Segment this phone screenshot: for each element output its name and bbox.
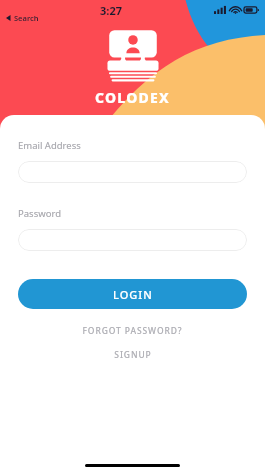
button[interactable] [18,229,247,251]
staticText: Email Address [18,139,81,152]
staticText: LOGIN [113,287,153,302]
staticText: COLODEX [95,88,170,107]
staticText: 3:27 [100,3,122,18]
button[interactable]: SIGNUP [18,347,247,363]
button[interactable]: FORGOT PASSWORD? [18,323,247,339]
staticText: Password [18,207,61,220]
button[interactable] [18,161,247,183]
staticText: Search [14,13,39,23]
staticText: SIGNUP [114,349,152,361]
staticText: FORGOT PASSWORD? [82,325,183,337]
other: Home indicator [85,464,180,467]
button[interactable]: LOGIN [18,279,247,309]
